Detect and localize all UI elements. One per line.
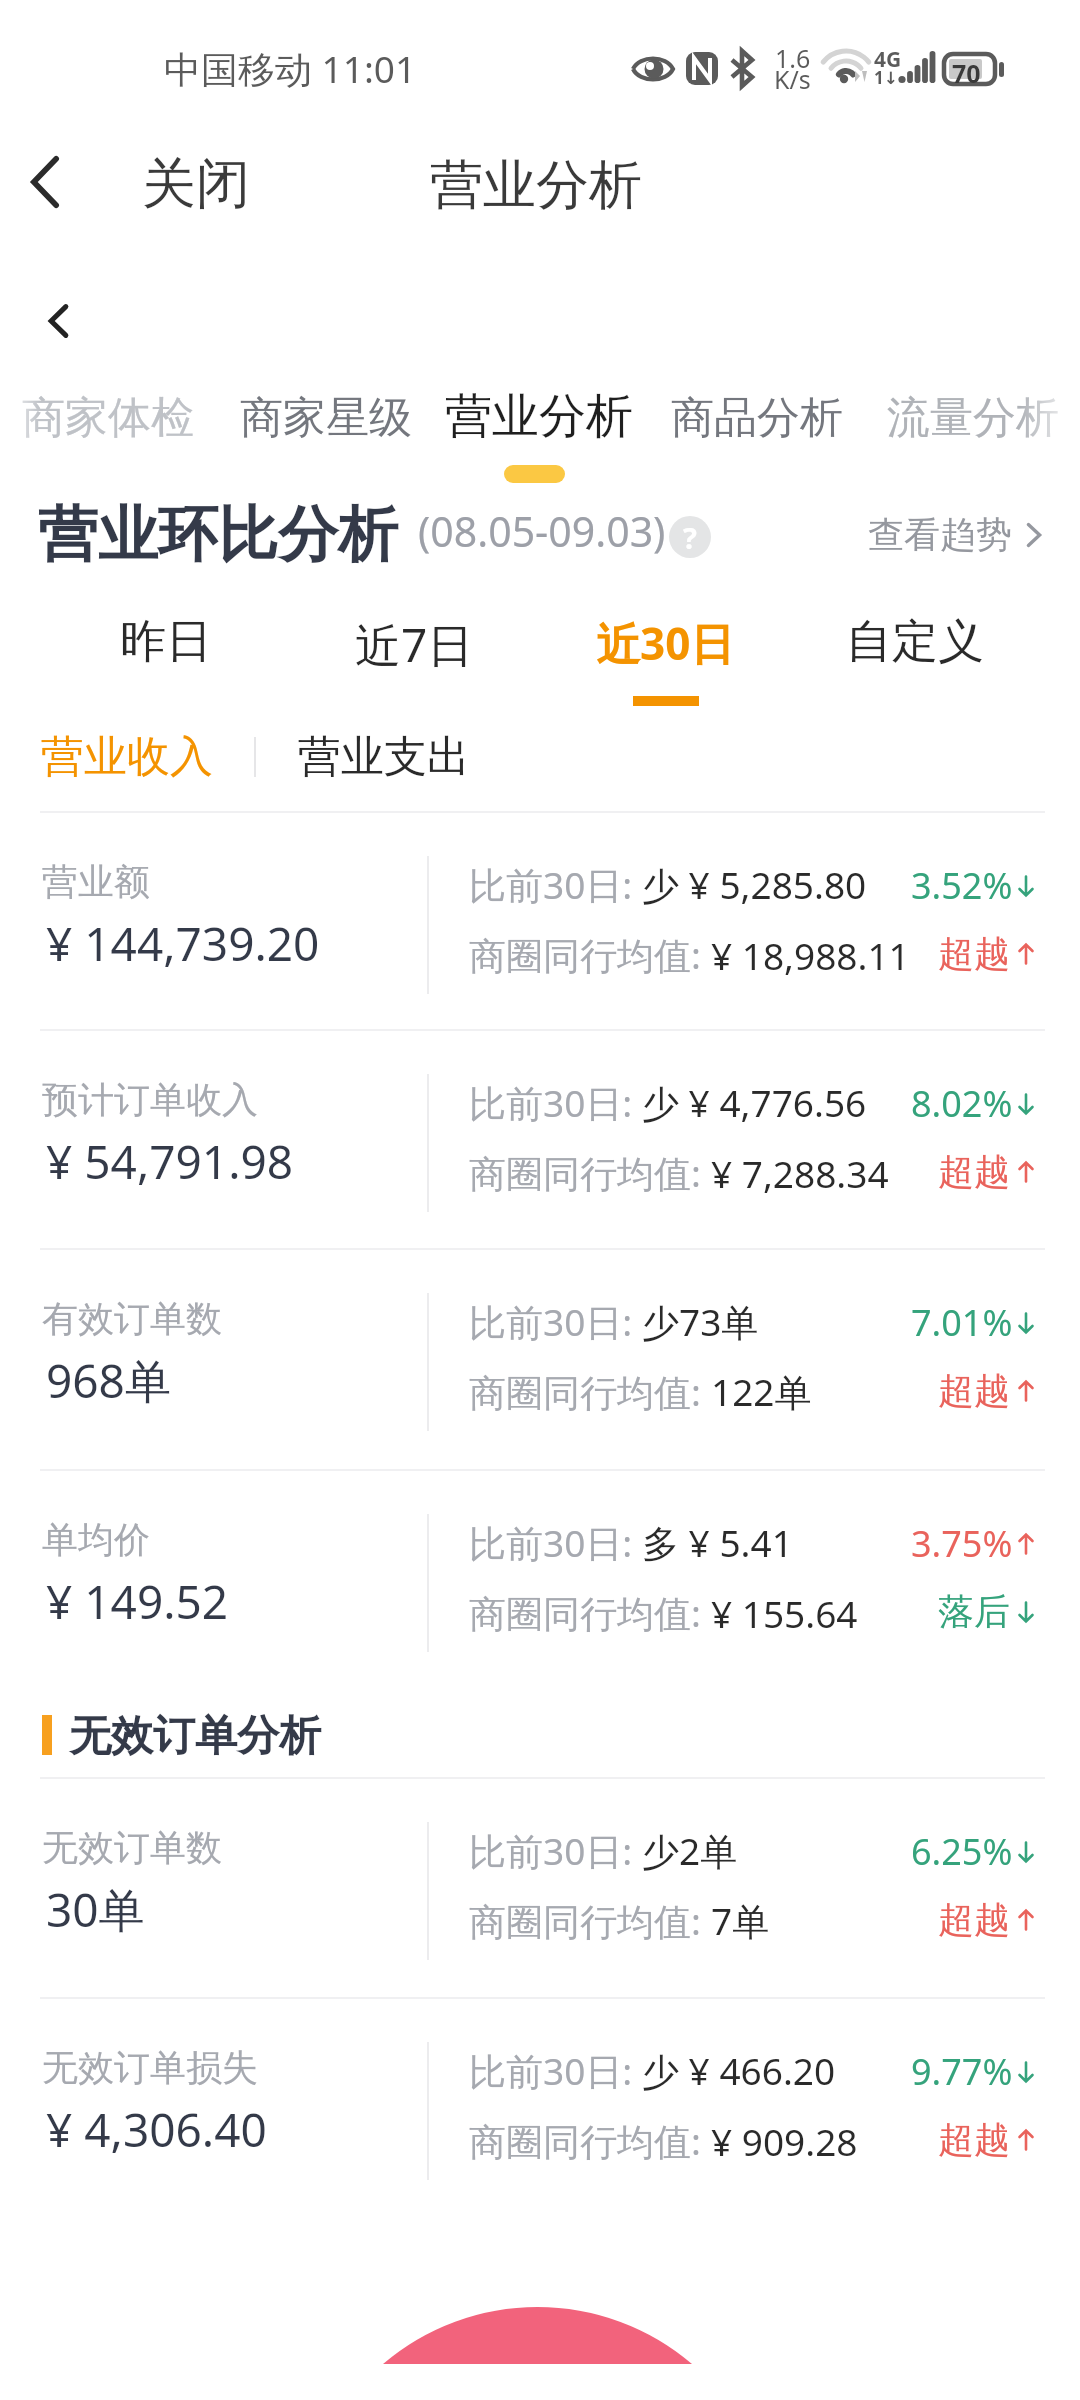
staticText: ¥ 144,739.20 — [46, 912, 320, 975]
staticText: 968单 — [46, 1349, 171, 1412]
button[interactable]: Help — [669, 516, 711, 558]
staticText: 无效订单数 — [42, 1825, 222, 1870]
staticText: ¥ 149.52 — [46, 1570, 229, 1633]
staticText: 关闭 — [142, 150, 250, 218]
button[interactable]: 无效订单数 — [0, 1777, 1080, 1995]
button[interactable]: 有效订单数 — [0, 1248, 1080, 1466]
staticText: 超越 — [938, 1149, 1010, 1194]
staticText: ¥ 7,288.34 — [711, 1148, 889, 1198]
button[interactable]: 昨日 — [116, 613, 216, 713]
button[interactable]: 近30日 — [590, 613, 740, 713]
staticText: 7单 — [711, 1895, 770, 1946]
staticText: ¥ 155.64 — [711, 1588, 858, 1638]
staticText: 超越 — [938, 931, 1010, 976]
staticText: 多 ¥ 5.41 — [642, 1517, 793, 1568]
staticText: 单均价 — [42, 1517, 150, 1562]
staticText: 自定义 — [846, 613, 984, 671]
staticText: ¥ 909.28 — [711, 2116, 858, 2166]
button[interactable]: Back — [8, 136, 84, 232]
staticText: ¥ 54,791.98 — [46, 1130, 294, 1193]
staticText: 比前30日: — [469, 1825, 642, 1876]
button[interactable]: 关闭 — [122, 130, 270, 238]
staticText: 有效订单数 — [42, 1296, 222, 1341]
staticText: 1↓ — [874, 66, 898, 89]
staticText: 无效订单损失 — [42, 2045, 258, 2090]
staticText: 商圈同行均值: — [469, 1147, 711, 1198]
staticText: 比前30日: — [469, 1517, 642, 1568]
staticText: 商品分析 — [671, 391, 843, 443]
staticText: 落后 — [938, 1589, 1010, 1634]
staticText: 商家体检 — [22, 391, 194, 443]
staticText: 122单 — [711, 1366, 812, 1417]
button[interactable]: 商家星级 — [228, 377, 424, 457]
staticText: 营业支出 — [298, 730, 470, 784]
button[interactable]: 近7日 — [339, 613, 489, 713]
staticText: 商圈同行均值: — [469, 929, 711, 980]
staticText: 营业环比分析 — [38, 497, 398, 573]
staticText: 8.02% — [911, 1079, 1013, 1128]
button[interactable]: 营业收入 — [11, 706, 243, 808]
staticText: 无效订单分析 — [69, 1710, 321, 1763]
staticText: 7.01% — [911, 1298, 1013, 1347]
button[interactable]: 商家体检 — [10, 377, 206, 457]
staticText: 少73单 — [642, 1296, 759, 1347]
staticText: 商家星级 — [240, 391, 412, 443]
staticText: ? — [683, 518, 697, 557]
staticText: 近7日 — [355, 613, 474, 676]
staticText: 昨日 — [120, 613, 212, 671]
staticText: 营业收入 — [41, 730, 213, 784]
staticText: 中国移动 11:01 — [164, 43, 417, 94]
staticText: 少 ¥ 466.20 — [642, 2045, 836, 2096]
staticText: 营业分析 — [445, 387, 633, 439]
staticText: 流量分析 — [887, 391, 1059, 443]
button[interactable]: 无效订单损失 — [0, 1997, 1080, 2215]
staticText: 超越 — [938, 1897, 1010, 1942]
button[interactable]: 查看趋势 — [868, 512, 1042, 557]
staticText: 商圈同行均值: — [469, 1895, 711, 1946]
staticText: 9.77% — [911, 2047, 1013, 2096]
staticText: K/s — [774, 62, 811, 96]
button[interactable]: 营业额 — [0, 811, 1080, 1029]
staticText: 超越 — [938, 1368, 1010, 1413]
button[interactable]: 商品分析 — [659, 377, 855, 457]
staticText: 6.25% — [911, 1827, 1013, 1876]
staticText: ¥ 18,988.11 — [711, 930, 910, 980]
button[interactable]: 营业分析 — [433, 377, 645, 457]
staticText: 商圈同行均值: — [469, 1587, 711, 1638]
staticText: 比前30日: — [469, 1077, 642, 1128]
staticText: 商圈同行均值: — [469, 2115, 711, 2166]
button[interactable]: 流量分析 — [875, 377, 1071, 457]
staticText: 预计订单收入 — [42, 1077, 258, 1122]
staticText: 营业额 — [42, 859, 150, 904]
button[interactable]: 单均价 — [0, 1469, 1080, 1687]
button[interactable]: 自定义 — [840, 613, 990, 713]
staticText: 比前30日: — [469, 2045, 642, 2096]
staticText: 营业分析 — [430, 152, 642, 219]
staticText: 比前30日: — [469, 859, 642, 910]
staticText: 1.6 — [775, 41, 811, 75]
staticText: 3.52% — [911, 861, 1013, 910]
staticText: 少 ¥ 5,285.80 — [642, 859, 867, 910]
staticText: 比前30日: — [469, 1296, 642, 1347]
staticText: 70 — [952, 56, 981, 90]
staticText: 30单 — [46, 1878, 145, 1941]
button[interactable]: Back — [36, 296, 80, 344]
staticText: ¥ 4,306.40 — [46, 2098, 267, 2161]
staticText: 少2单 — [642, 1825, 738, 1876]
staticText: 超越 — [938, 2117, 1010, 2162]
staticText: 少 ¥ 4,776.56 — [642, 1077, 867, 1128]
button[interactable]: 营业支出 — [268, 706, 500, 808]
staticText: 近30日 — [596, 613, 735, 673]
staticText: 查看趋势 — [868, 512, 1012, 557]
staticText: (08.05-09.03) — [418, 503, 666, 559]
staticText: 3.75% — [911, 1519, 1013, 1568]
staticText: 商圈同行均值: — [469, 1366, 711, 1417]
button[interactable]: 预计订单收入 — [0, 1029, 1080, 1247]
staticText: 4G — [874, 45, 902, 74]
